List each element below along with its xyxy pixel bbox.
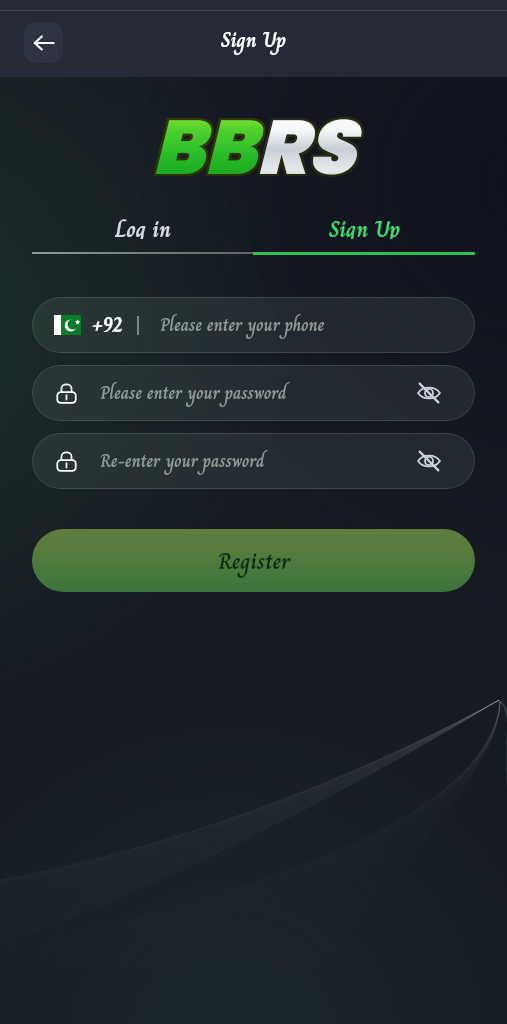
staticText: BB	[150, 92, 254, 198]
staticText: Sign Up	[221, 24, 286, 57]
staticText: RS	[254, 94, 353, 200]
staticText: RS	[254, 96, 353, 202]
staticText: RS	[258, 96, 357, 202]
staticText: RS	[258, 92, 357, 198]
button[interactable]: Show password	[407, 439, 451, 483]
staticText: RS	[258, 94, 357, 200]
staticText: BB	[154, 96, 258, 202]
button[interactable]: Log in	[32, 211, 253, 239]
button[interactable]: Sign Up	[253, 211, 475, 239]
button[interactable]: +92	[32, 297, 475, 353]
staticText: BB	[152, 94, 256, 200]
staticText: BB	[150, 94, 254, 200]
staticText: Register	[218, 543, 290, 579]
staticText: Sign Up	[329, 211, 400, 239]
button[interactable]: Register	[32, 529, 475, 592]
staticText: Re-enter your password	[100, 447, 265, 475]
button[interactable]: Show password	[407, 371, 451, 415]
button[interactable]: Please enter your password	[32, 365, 475, 421]
staticText: RS	[256, 92, 355, 198]
staticText: RS	[256, 94, 355, 200]
button[interactable]: Re-enter your password	[32, 433, 475, 489]
staticText: RS	[254, 92, 353, 198]
staticText: BB	[152, 92, 256, 198]
staticText: +92	[92, 309, 123, 342]
staticText: BB	[150, 96, 254, 202]
staticText: BB	[154, 92, 258, 198]
staticText: Please enter your phone	[160, 311, 325, 339]
staticText: Log in	[115, 211, 171, 239]
staticText: RS	[256, 96, 355, 202]
staticText: BB	[154, 94, 258, 200]
staticText: BB	[152, 96, 256, 202]
staticText: Please enter your password	[100, 379, 287, 407]
button[interactable]: Back	[24, 22, 63, 63]
